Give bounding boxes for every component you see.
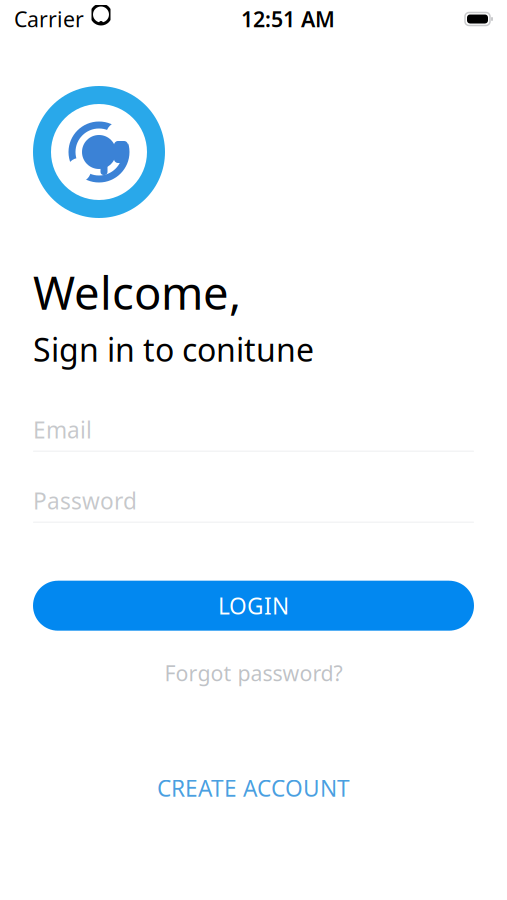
- staticText: Welcome,: [33, 262, 241, 322]
- button[interactable]: CREATE ACCOUNT: [0, 763, 507, 813]
- staticText: LOGIN: [218, 591, 289, 621]
- staticText: CREATE ACCOUNT: [157, 773, 350, 803]
- staticText: Sign in to conitune: [33, 328, 314, 371]
- staticText: Carrier: [14, 5, 84, 33]
- staticText: 12:51 AM: [241, 5, 335, 33]
- button[interactable]: LOGIN: [33, 581, 474, 631]
- staticText: Password: [33, 486, 137, 516]
- button[interactable]: Forgot password?: [0, 649, 507, 697]
- staticText: Email: [33, 415, 92, 445]
- staticText: Forgot password?: [164, 659, 342, 687]
